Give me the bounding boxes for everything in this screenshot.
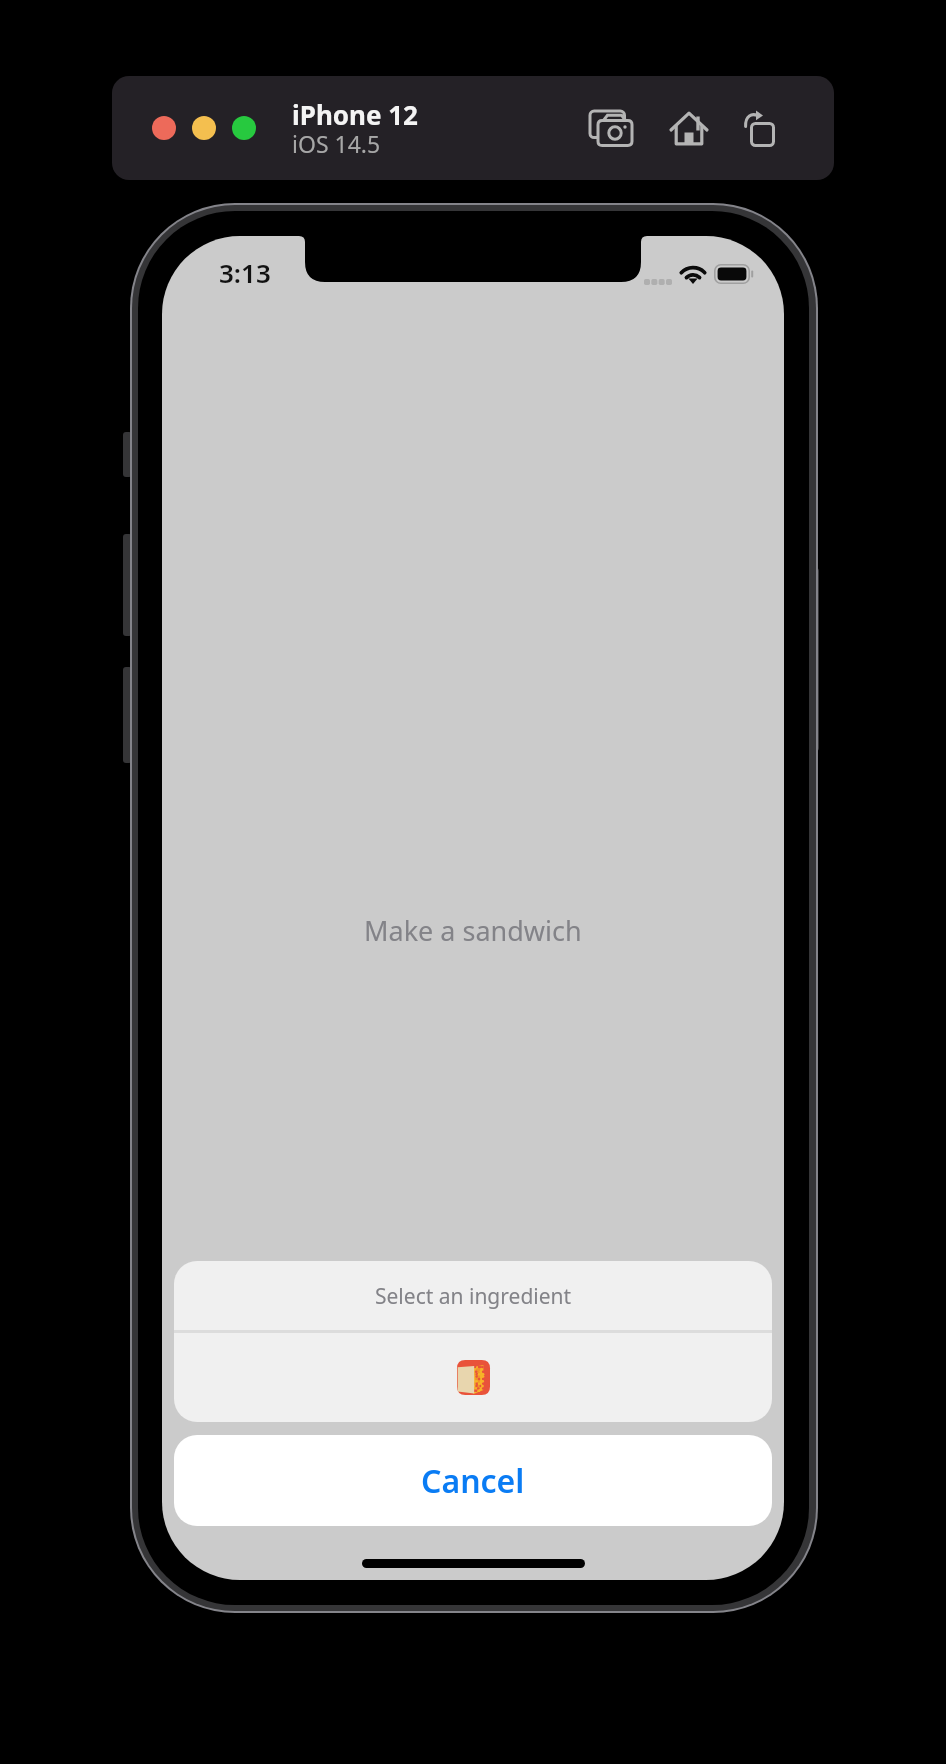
button[interactable]: Bread — [174, 1333, 772, 1422]
button[interactable]: Cancel — [174, 1435, 772, 1526]
button[interactable]: Minimise — [187, 111, 221, 145]
button[interactable]: Rotate — [731, 100, 787, 156]
staticText: 3:13 — [219, 255, 271, 290]
staticText: iPhone 12 — [292, 97, 418, 132]
staticText: Make a sandwich — [364, 912, 582, 949]
staticText: Cancel — [421, 1459, 525, 1503]
button[interactable]: Maximise — [227, 111, 261, 145]
staticText: iOS 14.5 — [292, 128, 381, 159]
button[interactable]: Home — [661, 100, 717, 156]
staticText: Select an ingredient — [375, 1282, 572, 1311]
button[interactable]: Screenshot — [583, 100, 639, 156]
button[interactable]: Close — [147, 111, 181, 145]
